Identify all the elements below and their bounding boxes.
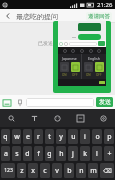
button[interactable]: j — [68, 146, 78, 161]
button[interactable]: e — [23, 129, 32, 144]
staticText: a — [4, 149, 8, 159]
button[interactable]: l — [92, 146, 102, 161]
button[interactable]: Settings — [92, 109, 115, 127]
button[interactable]: Clipboard — [69, 109, 92, 127]
staticText: 邀请回答 — [88, 13, 110, 20]
button[interactable]: u — [68, 129, 78, 144]
staticText: l — [96, 149, 98, 159]
button[interactable]: v — [52, 163, 62, 178]
button[interactable]: d — [23, 146, 32, 161]
button[interactable]: + — [104, 146, 114, 161]
staticText: h — [59, 149, 64, 159]
button[interactable]: k — [80, 146, 90, 161]
staticText: c — [43, 166, 47, 176]
button[interactable]: x — [28, 163, 38, 178]
button[interactable]: a — [1, 146, 10, 161]
staticText: r — [37, 132, 40, 142]
staticText: p — [107, 132, 112, 142]
staticText: OFF — [72, 73, 78, 77]
staticText: 21:26 — [97, 1, 113, 9]
staticText: u — [71, 132, 76, 142]
button[interactable]: r — [34, 129, 43, 144]
staticText: ON — [62, 73, 67, 77]
button[interactable]: c — [40, 163, 50, 178]
staticText: m — [90, 166, 97, 176]
button[interactable]: Album — [0, 96, 13, 109]
staticText: x — [31, 166, 35, 176]
staticText: + — [107, 149, 112, 159]
button[interactable]: m — [88, 163, 98, 178]
staticText: 已发送 — [38, 40, 53, 46]
staticText: 123 — [4, 167, 13, 174]
button[interactable]: 发送 — [96, 97, 113, 107]
staticText: ⌫ — [103, 167, 112, 174]
staticText: k — [83, 149, 87, 159]
button[interactable]: Photo message — [53, 21, 111, 93]
staticText: English — [88, 56, 100, 61]
staticText: i — [84, 132, 86, 142]
staticText: 发送 — [99, 98, 111, 106]
button[interactable]: Search — [0, 109, 23, 127]
staticText: 最恋吃的提问 — [16, 12, 58, 21]
button[interactable]: Voice — [13, 96, 26, 109]
staticText: d — [25, 149, 30, 159]
button[interactable]: b — [64, 163, 74, 178]
button[interactable]: h — [56, 146, 66, 161]
staticText: t — [48, 132, 51, 142]
staticText: j — [72, 149, 74, 159]
button[interactable]: 邀请回答 — [86, 12, 112, 21]
button[interactable]: z — [17, 163, 26, 178]
staticText: q — [3, 132, 8, 142]
staticText: z — [20, 166, 24, 176]
staticText: v — [55, 166, 59, 176]
staticText: w — [14, 132, 20, 142]
staticText: Japanese — [62, 56, 77, 61]
button[interactable]: g — [45, 146, 54, 161]
button[interactable]: 123 — [1, 163, 15, 178]
button[interactable]: ⌫ — [100, 163, 114, 178]
staticText: e — [26, 132, 30, 142]
staticText: g — [47, 149, 52, 159]
staticText: f — [37, 149, 40, 159]
button[interactable]: w — [12, 129, 21, 144]
button[interactable]: o — [92, 129, 102, 144]
button[interactable]: f — [34, 146, 43, 161]
button[interactable]: s — [12, 146, 21, 161]
button[interactable]: p — [104, 129, 114, 144]
staticText: s — [15, 149, 19, 159]
button[interactable]: n — [76, 163, 86, 178]
button[interactable]: y — [56, 129, 66, 144]
button[interactable] — [26, 98, 94, 107]
button[interactable]: Theme — [23, 109, 46, 127]
button[interactable]: Back — [0, 9, 16, 23]
staticText: o — [95, 132, 100, 142]
staticText: n — [79, 166, 84, 176]
button[interactable]: q — [1, 129, 10, 144]
button[interactable]: t — [45, 129, 54, 144]
staticText: ON — [86, 73, 91, 77]
staticText: OFF — [96, 73, 102, 77]
button[interactable]: i — [80, 129, 90, 144]
button[interactable]: Emoji — [46, 109, 69, 127]
staticText: b — [67, 166, 72, 176]
staticText: y — [59, 132, 63, 142]
